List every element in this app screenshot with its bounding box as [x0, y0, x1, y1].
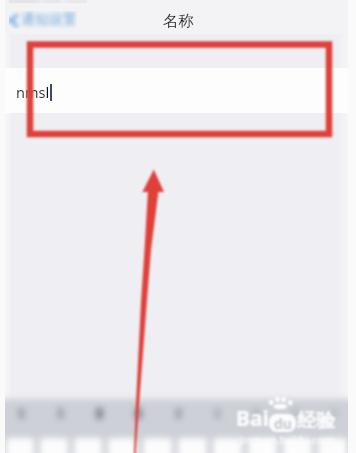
button[interactable] — [143, 438, 172, 453]
staticText: 经验 — [297, 409, 335, 433]
button[interactable] — [248, 438, 277, 453]
staticText: nmsl — [16, 82, 50, 102]
staticText: 名称 — [163, 11, 194, 31]
staticText: jingyan.baidu.com — [239, 432, 335, 447]
button[interactable] — [40, 438, 68, 453]
button[interactable] — [318, 438, 347, 453]
staticText: Bai — [236, 404, 269, 433]
button[interactable] — [74, 438, 102, 453]
other: Baidu logo — [266, 396, 294, 409]
button[interactable] — [6, 438, 34, 453]
staticText: 通知设置 — [21, 11, 77, 29]
staticText: du — [274, 414, 292, 432]
button[interactable] — [213, 438, 242, 453]
button[interactable]: nmsl — [5, 68, 348, 113]
button[interactable]: Back — [9, 11, 77, 29]
button[interactable] — [178, 438, 207, 453]
button[interactable] — [283, 438, 312, 453]
button[interactable] — [108, 438, 137, 453]
